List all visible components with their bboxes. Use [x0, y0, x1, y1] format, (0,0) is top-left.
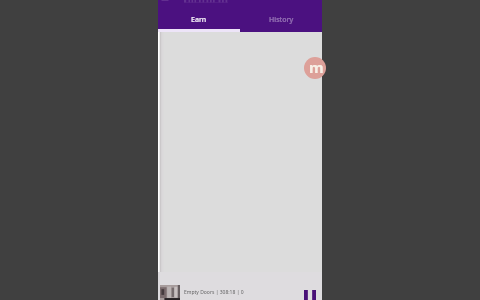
- staticText: Empty Doors | 308:18 | 0: [184, 289, 244, 296]
- staticText: Earn: [191, 15, 207, 25]
- button[interactable]: History: [240, 10, 322, 30]
- button[interactable]: Pause: [304, 290, 316, 300]
- staticText: History: [269, 15, 294, 25]
- button[interactable]: Now playing artwork: [160, 285, 180, 300]
- button[interactable]: Offers: [304, 57, 326, 79]
- button[interactable]: Earn: [158, 10, 240, 30]
- button[interactable]: Money App toolbar: [158, 0, 322, 3]
- staticText: m: [309, 57, 324, 77]
